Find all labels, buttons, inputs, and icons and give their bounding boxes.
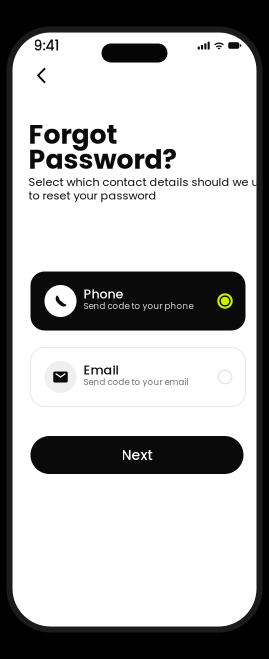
staticText: Select which contact details should we u…	[28, 174, 269, 190]
button[interactable]: Back	[29, 63, 53, 87]
staticText: to reset your password	[28, 188, 156, 203]
staticText: Send code to your phone	[83, 300, 193, 312]
staticText: 9:41	[33, 36, 59, 55]
staticText: Next	[121, 445, 152, 465]
staticText: Send code to your email	[83, 376, 188, 388]
staticText: Password?	[28, 141, 176, 178]
staticText: Forgot	[28, 116, 117, 153]
staticText: Email	[83, 361, 118, 379]
button[interactable]: Email	[30, 347, 245, 406]
staticText: Phone	[83, 285, 123, 303]
button[interactable]: Next	[30, 436, 243, 474]
button[interactable]: Phone	[30, 271, 245, 330]
